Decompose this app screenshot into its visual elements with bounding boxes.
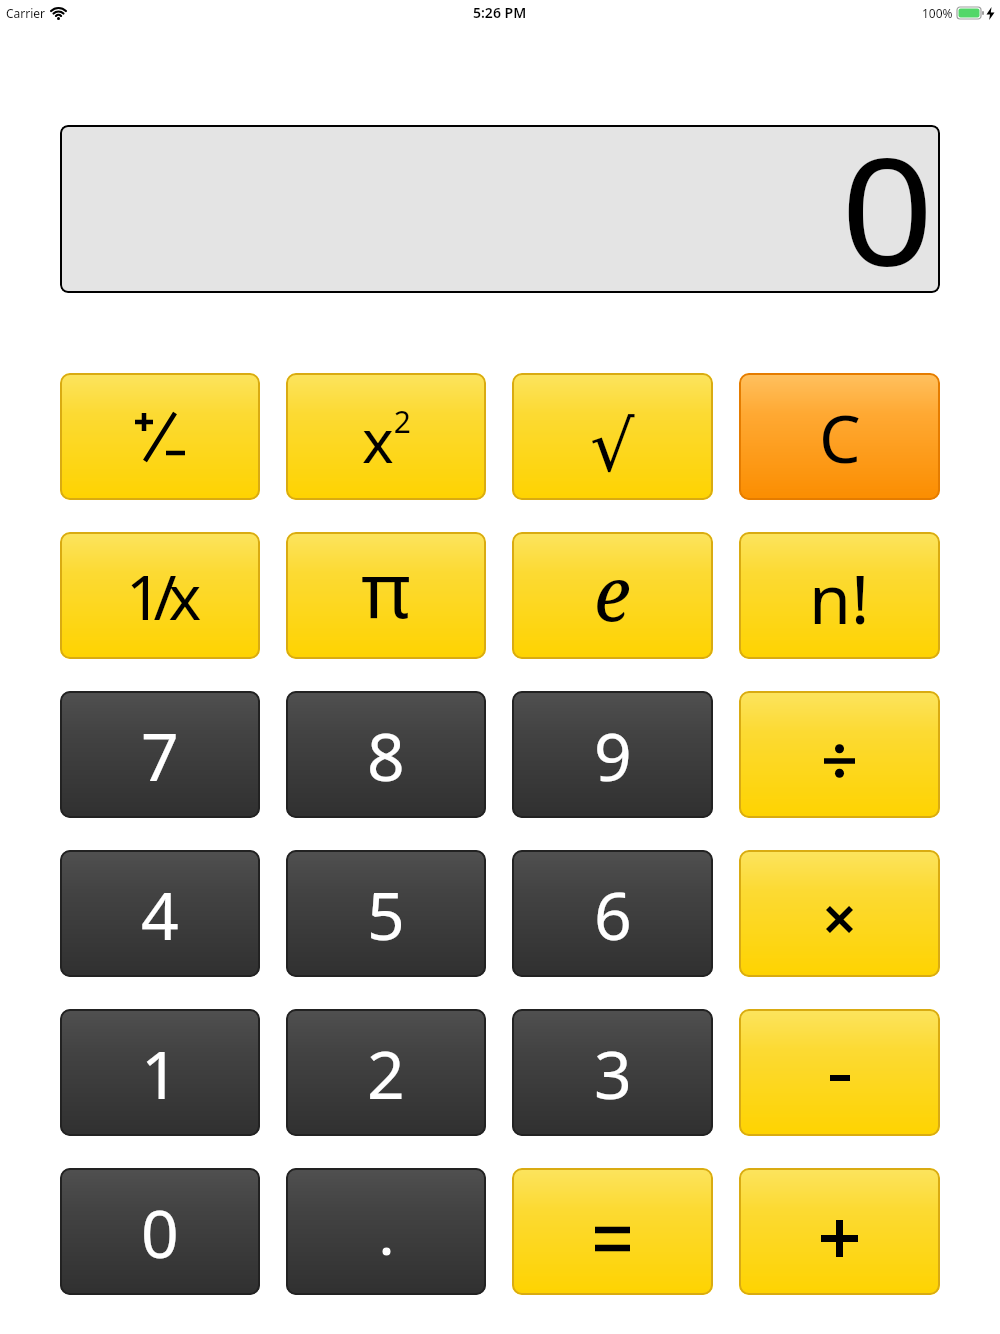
button[interactable] (739, 1009, 940, 1136)
button[interactable]: 8 (286, 691, 486, 818)
staticText: C (819, 392, 861, 482)
staticText: n! (809, 551, 870, 644)
button[interactable]: C (739, 373, 940, 500)
staticText: 100% (922, 5, 953, 21)
button[interactable]: 0 (60, 125, 940, 293)
button[interactable]: 0 (60, 1168, 260, 1295)
button[interactable] (60, 373, 260, 500)
staticText: 8 (367, 710, 405, 800)
staticText: 5:26 PM (473, 3, 527, 22)
button[interactable]: π (286, 532, 486, 659)
staticText: 4 (141, 869, 179, 959)
button[interactable]: 1/x (60, 532, 260, 659)
staticText: 6 (594, 869, 632, 959)
button[interactable]: 5 (286, 850, 486, 977)
button[interactable] (286, 1168, 486, 1295)
button[interactable]: e (512, 532, 713, 659)
button[interactable]: 7 (60, 691, 260, 818)
staticText: π (361, 537, 411, 641)
staticText: 9 (594, 710, 632, 800)
button[interactable]: 2 (286, 1009, 486, 1136)
staticText: √ (590, 406, 635, 487)
button[interactable] (739, 691, 940, 818)
staticText: 5 (367, 869, 405, 959)
button[interactable] (739, 850, 940, 977)
button[interactable]: 1 (60, 1009, 260, 1136)
staticText: x2 (362, 399, 411, 481)
button[interactable]: 9 (512, 691, 713, 818)
staticText: 1/x (126, 554, 194, 638)
button[interactable]: x2 (286, 373, 486, 500)
button[interactable]: √ (512, 373, 713, 500)
staticText: 2 (367, 1028, 405, 1118)
button[interactable]: 4 (60, 850, 260, 977)
staticText: 1 (141, 1028, 179, 1118)
button[interactable]: n! (739, 532, 940, 659)
button[interactable]: 6 (512, 850, 713, 977)
staticText: 3 (594, 1028, 632, 1118)
button[interactable] (512, 1168, 713, 1295)
staticText: Carrier (6, 5, 46, 21)
staticText: 0 (841, 125, 934, 276)
staticText: 0 (141, 1187, 179, 1277)
staticText: 7 (141, 710, 179, 800)
button[interactable] (739, 1168, 940, 1295)
button[interactable]: 3 (512, 1009, 713, 1136)
staticText: e (594, 542, 631, 643)
